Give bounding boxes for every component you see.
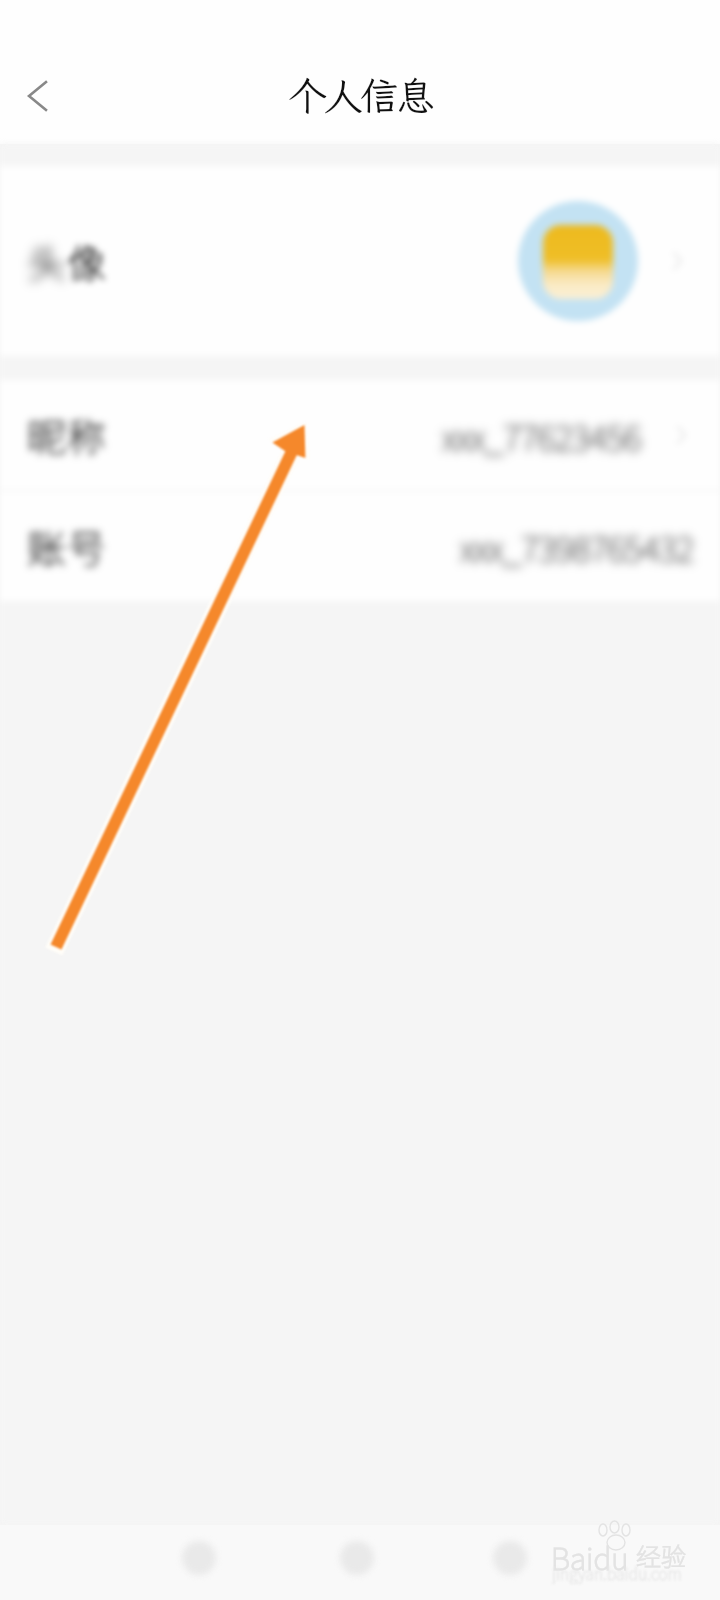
staticText: jingyan.baidu.com (552, 1561, 682, 1584)
button[interactable]: 昵 (0, 380, 720, 490)
button[interactable]: 账 (0, 491, 720, 601)
staticText: 号 (67, 518, 107, 574)
button[interactable]: 头 (0, 166, 720, 356)
staticText: 称 (67, 407, 107, 463)
button[interactable]: Back (8, 66, 68, 126)
staticText: 像 (67, 233, 107, 289)
staticText: 账 (27, 518, 67, 574)
button[interactable]: Back (171, 1530, 227, 1586)
staticText: 昵 (27, 407, 67, 463)
staticText: xxx_77623456 (442, 410, 641, 461)
button[interactable]: Recents (482, 1530, 538, 1586)
staticText: 头 (27, 233, 67, 289)
staticText: 个人信息 (288, 70, 433, 121)
button[interactable]: Home (329, 1530, 385, 1586)
staticText: 经验 (636, 1537, 687, 1573)
staticText: xxx_7398765432 (460, 521, 694, 572)
staticText: Baidu (551, 1535, 629, 1578)
